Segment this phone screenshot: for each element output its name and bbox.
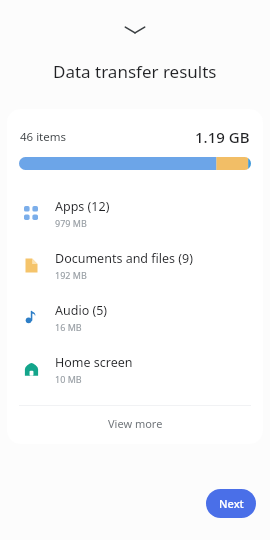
staticText: View more: [108, 416, 163, 431]
staticText: Data transfer results: [53, 60, 217, 83]
staticText: 10 MB: [55, 373, 82, 385]
staticText: Audio (5): [55, 302, 108, 319]
staticText: 192 MB: [55, 269, 87, 281]
staticText: Apps (12): [55, 198, 110, 215]
staticText: Next: [219, 496, 244, 511]
button[interactable]: Collapse: [0, 0, 270, 60]
button[interactable]: Apps (12): [7, 187, 263, 239]
staticText: Home screen: [55, 354, 133, 371]
staticText: 1.19 GB: [195, 127, 250, 147]
staticText: 979 MB: [55, 217, 87, 229]
staticText: Documents and files (9): [55, 250, 193, 267]
staticText: 16 MB: [55, 321, 82, 333]
button[interactable]: Audio (5): [7, 291, 263, 343]
button[interactable]: View more: [7, 406, 263, 440]
staticText: 46 items: [20, 129, 67, 145]
button[interactable]: Documents and files (9): [7, 239, 263, 291]
button[interactable]: Next: [206, 489, 256, 518]
button[interactable]: Home screen: [7, 343, 263, 395]
